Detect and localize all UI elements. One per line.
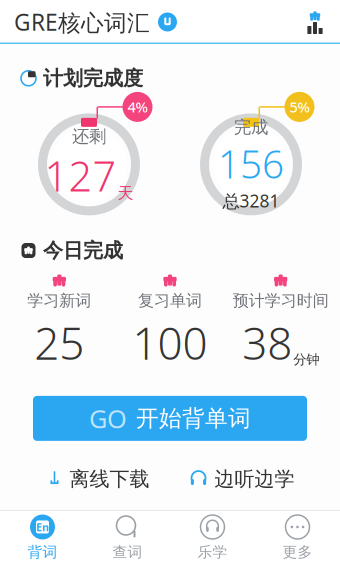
staticText: 今日完成 <box>43 238 123 263</box>
staticText: En <box>36 520 49 534</box>
staticText: 背词 <box>27 543 57 561</box>
staticText: GRE核心词汇 <box>14 7 150 37</box>
button[interactable]: GO <box>33 396 307 441</box>
staticText: 5% <box>289 97 309 117</box>
button[interactable]: Statistics <box>304 4 340 40</box>
staticText: 预计学习时间 <box>233 291 329 310</box>
staticText: 更多 <box>282 543 312 561</box>
staticText: 离线下载 <box>69 467 149 491</box>
staticText: 完成 <box>234 117 268 138</box>
staticText: 复习单词 <box>138 291 202 310</box>
button[interactable]: 乐学 <box>170 508 255 566</box>
staticText: 38 <box>242 313 292 372</box>
button[interactable]: En <box>0 508 85 566</box>
staticText: 100 <box>132 313 207 372</box>
staticText: 分钟 <box>293 351 319 368</box>
button[interactable]: 查词 <box>85 508 170 566</box>
staticText: 还剩 <box>72 126 106 147</box>
staticText: 学习新词 <box>27 291 91 310</box>
button[interactable]: 边听边学 <box>170 459 314 499</box>
staticText: 乐学 <box>197 543 227 561</box>
staticText: 25 <box>34 313 84 372</box>
staticText: 156 <box>218 138 284 189</box>
staticText: 总3281 <box>222 189 279 212</box>
staticText: 4% <box>127 97 147 117</box>
staticText: 查词 <box>112 543 142 561</box>
staticText: 计划完成度 <box>43 66 143 91</box>
staticText: 天 <box>117 183 133 203</box>
staticText: 边听边学 <box>214 467 294 491</box>
button[interactable]: 离线下载 <box>26 459 170 499</box>
button[interactable]: GRE核心词汇 <box>0 1 177 43</box>
button[interactable]: 更多 <box>255 508 340 566</box>
staticText: GO <box>89 401 127 435</box>
staticText: 127 <box>44 148 116 203</box>
staticText: 开始背单词 <box>136 404 251 432</box>
